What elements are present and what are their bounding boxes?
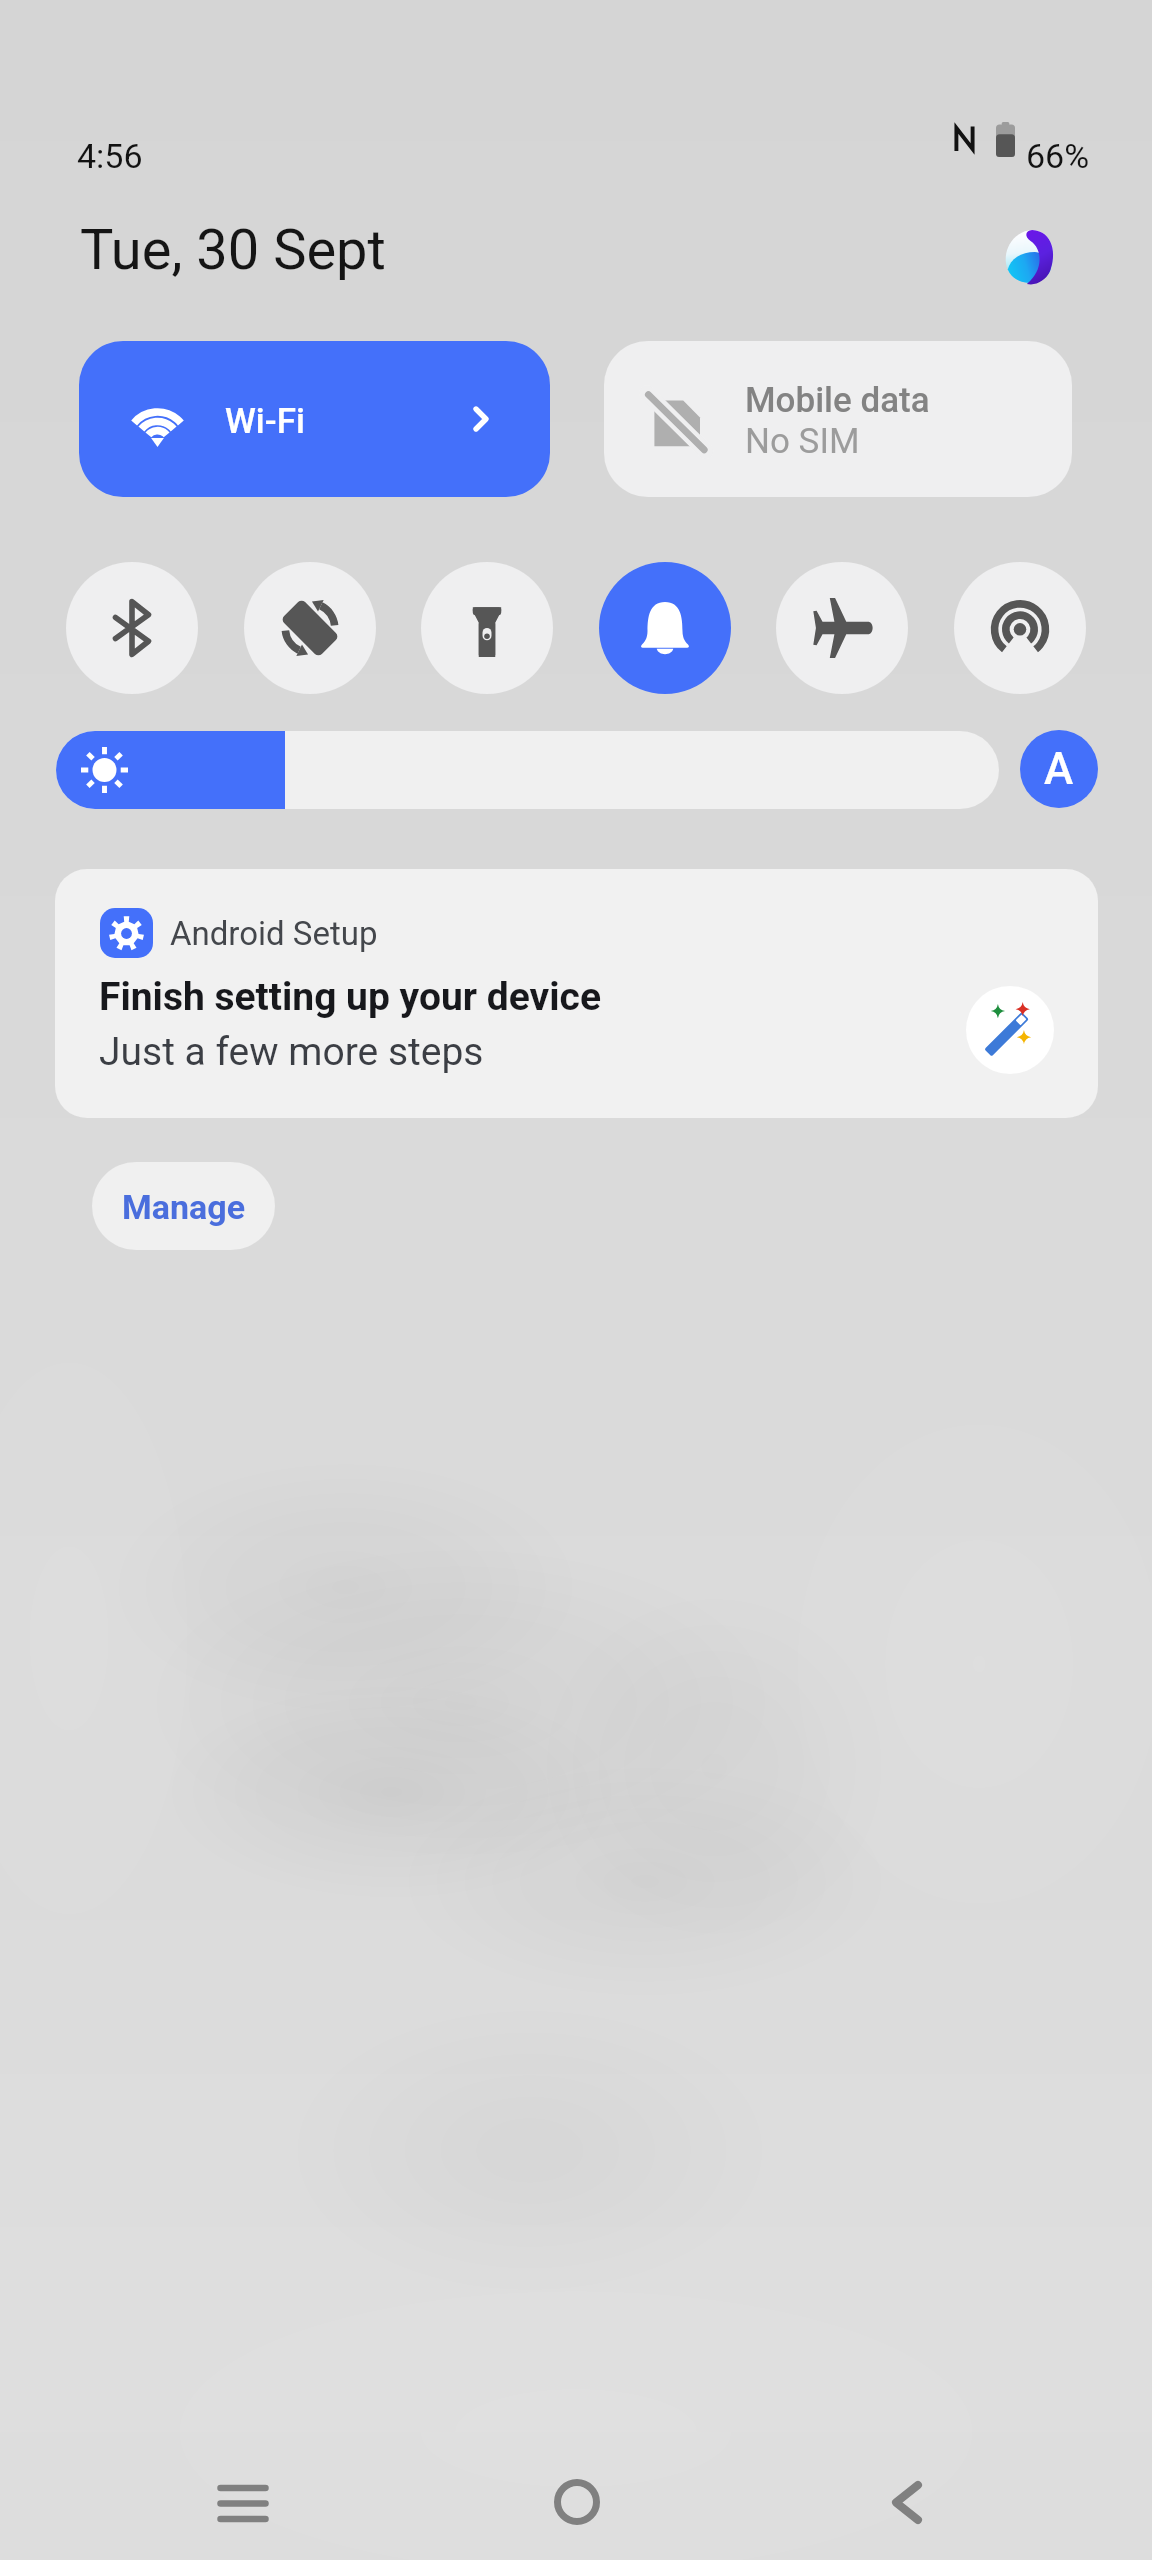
staticText: 4:56 bbox=[77, 136, 143, 176]
button[interactable]: Home bbox=[514, 2447, 639, 2557]
button[interactable]: Wi-Fi bbox=[79, 341, 550, 497]
button[interactable]: Cast bbox=[954, 562, 1086, 694]
button[interactable]: Airplane mode bbox=[776, 562, 908, 694]
button[interactable]: Brightness bbox=[56, 731, 999, 809]
staticText: Wi-Fi bbox=[225, 401, 305, 442]
button[interactable]: Do not disturb bbox=[599, 562, 731, 694]
staticText: Android Setup bbox=[170, 914, 378, 953]
button[interactable]: Recents bbox=[180, 2448, 305, 2558]
staticText: 66% bbox=[1026, 136, 1090, 176]
button[interactable]: Auto brightness bbox=[1020, 730, 1098, 808]
button[interactable]: Auto rotate bbox=[244, 562, 376, 694]
button[interactable]: Manage bbox=[92, 1162, 275, 1250]
staticText: No SIM bbox=[745, 421, 860, 462]
button[interactable]: Mobile data bbox=[604, 341, 1072, 497]
staticText: Finish setting up your device bbox=[99, 974, 601, 1020]
button[interactable]: Assistant bbox=[1003, 230, 1056, 285]
button[interactable]: Bluetooth bbox=[66, 562, 198, 694]
staticText: Manage bbox=[122, 1187, 246, 1227]
staticText: Tue, 30 Sept bbox=[80, 217, 386, 283]
staticText: Mobile data bbox=[745, 380, 930, 421]
button[interactable]: Flashlight bbox=[421, 562, 553, 694]
button[interactable]: Android Setup bbox=[55, 869, 1098, 1118]
staticText: A bbox=[1044, 743, 1074, 795]
staticText: Just a few more steps bbox=[99, 1029, 484, 1075]
button[interactable]: Back bbox=[844, 2447, 969, 2557]
